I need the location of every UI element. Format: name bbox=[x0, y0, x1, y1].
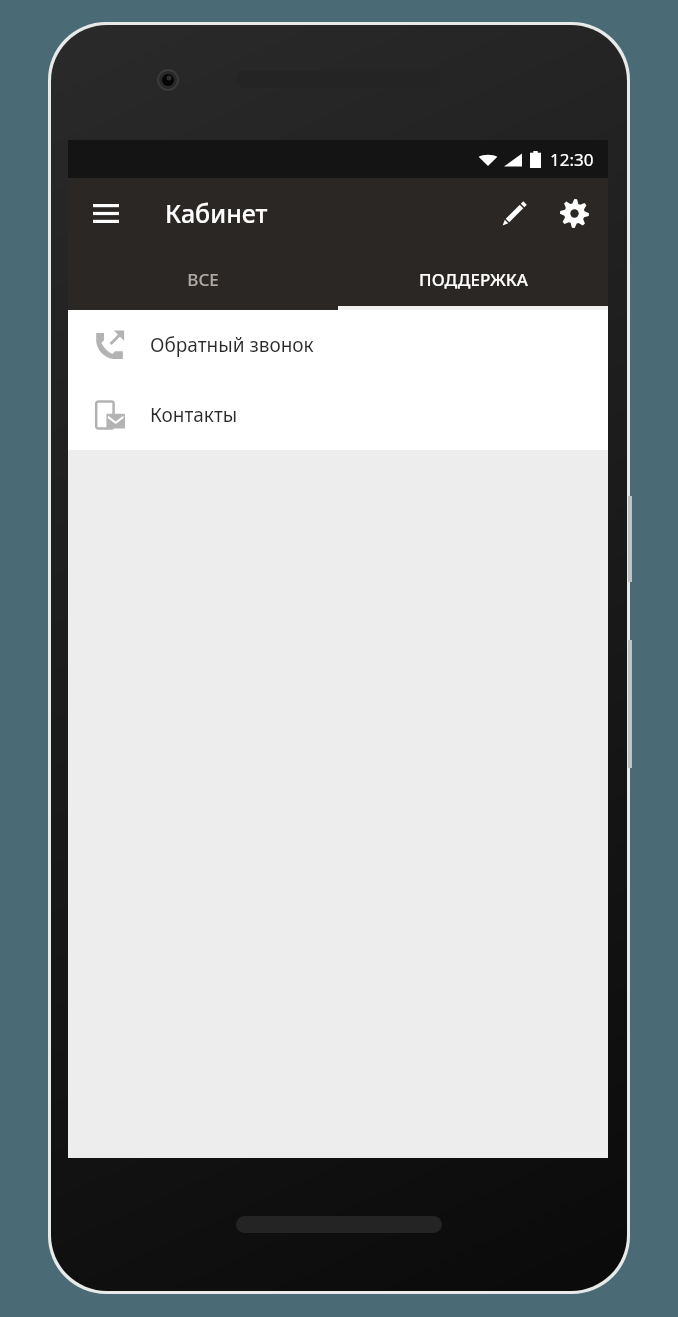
button[interactable]: Edit bbox=[490, 189, 538, 237]
button[interactable]: Контакты bbox=[68, 380, 608, 450]
staticText: Контакты bbox=[150, 402, 238, 428]
button[interactable]: Обратный звонок bbox=[68, 310, 608, 380]
staticText: 12:30 bbox=[550, 148, 594, 171]
button[interactable]: ПОДДЕРЖКА bbox=[338, 248, 608, 310]
button[interactable]: Open navigation menu bbox=[82, 189, 130, 237]
staticText: ВСЕ bbox=[187, 268, 219, 291]
staticText: Обратный звонок bbox=[150, 332, 314, 358]
staticText: Кабинет bbox=[165, 196, 268, 230]
button[interactable]: Settings bbox=[550, 189, 598, 237]
staticText: ПОДДЕРЖКА bbox=[419, 268, 528, 291]
button[interactable]: ВСЕ bbox=[68, 248, 338, 310]
